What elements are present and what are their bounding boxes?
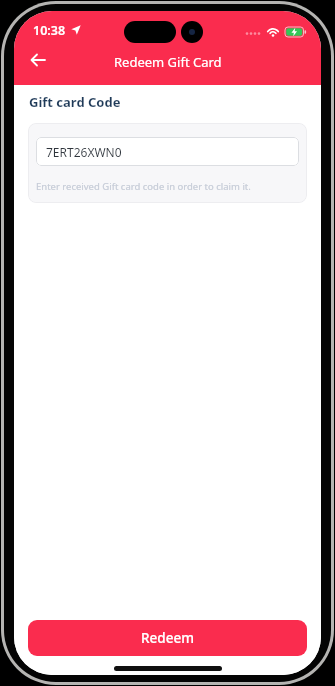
- staticText: Redeem: [141, 629, 194, 647]
- button[interactable]: [22, 44, 54, 76]
- staticText: Gift card Code: [29, 93, 121, 111]
- staticText: 7ERT26XWN0: [46, 144, 122, 160]
- staticText: Enter received Gift card code in order t…: [36, 180, 251, 193]
- staticText: Redeem Gift Card: [114, 53, 222, 71]
- button[interactable]: 7ERT26XWN0: [36, 137, 299, 166]
- button[interactable]: Redeem: [28, 620, 307, 656]
- staticText: 10:38: [33, 22, 66, 39]
